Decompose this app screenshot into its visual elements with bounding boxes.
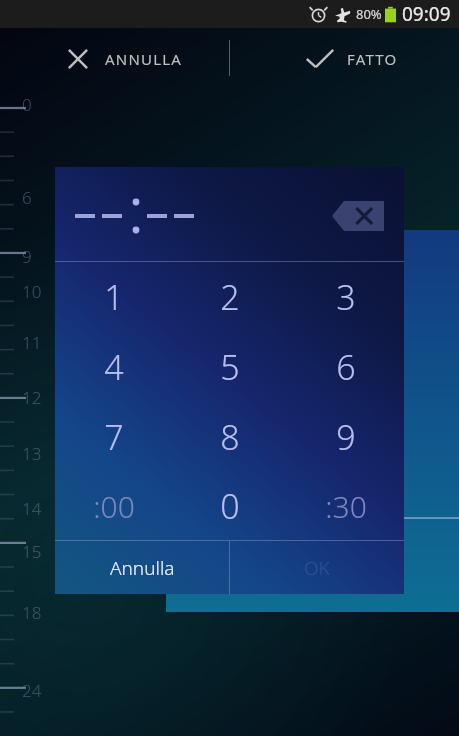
staticText: 8 (220, 414, 240, 460)
staticText: 9 (22, 245, 32, 268)
button[interactable]: 7 (55, 402, 172, 472)
staticText: 09:09 (402, 1, 451, 27)
staticText: 0 (22, 93, 32, 116)
button[interactable]: 6 (288, 332, 404, 402)
staticText: 9 (336, 414, 356, 460)
staticText: 1 (104, 274, 124, 320)
staticText: 0 (220, 483, 240, 529)
button[interactable]: FATTO (230, 28, 459, 90)
staticText: 3 (336, 274, 356, 320)
staticText: 10 (22, 280, 42, 303)
staticText: 24 (22, 679, 42, 702)
button[interactable]: 9 (288, 402, 404, 472)
button[interactable]: 2 (172, 262, 288, 332)
staticText: 80% (356, 5, 382, 23)
staticText: 11 (22, 331, 42, 354)
staticText: OK (304, 555, 330, 581)
button[interactable]: Backspace (330, 199, 386, 233)
staticText: 4 (104, 344, 124, 390)
staticText: ANNULLA (105, 49, 183, 69)
staticText: 6 (22, 186, 32, 209)
staticText: :00 (93, 486, 135, 527)
button[interactable]: Annulla (55, 541, 229, 594)
button[interactable]: 1 (55, 262, 172, 332)
staticText: 2 (220, 274, 240, 320)
staticText: 18 (22, 601, 42, 624)
button[interactable]: 3 (288, 262, 404, 332)
button[interactable]: 8 (172, 402, 288, 472)
button[interactable]: 4 (55, 332, 172, 402)
staticText: 15 (22, 540, 42, 563)
button[interactable]: OK (230, 541, 404, 594)
button[interactable]: 5 (172, 332, 288, 402)
staticText: 7 (104, 414, 124, 460)
staticText: 6 (336, 344, 356, 390)
staticText: 13 (22, 442, 42, 465)
staticText: 5 (220, 344, 240, 390)
staticText: :30 (325, 486, 367, 527)
button[interactable]: :30 (288, 472, 404, 540)
button[interactable]: :00 (55, 472, 172, 540)
staticText: 14 (22, 497, 42, 520)
staticText: 12 (22, 386, 42, 409)
button[interactable]: ANNULLA (0, 28, 229, 90)
staticText: FATTO (347, 49, 398, 69)
button[interactable]: 0 (172, 472, 288, 540)
staticText: Annulla (110, 555, 175, 581)
